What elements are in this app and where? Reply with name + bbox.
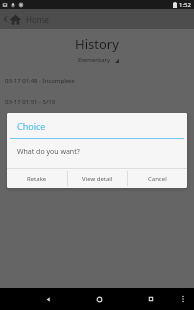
button[interactable]: Home: [74, 288, 125, 310]
staticText: Home: [26, 14, 49, 25]
button[interactable]: More options: [176, 288, 190, 310]
staticText: Elementary: [78, 56, 111, 64]
button[interactable]: Navigate up: [0, 9, 194, 29]
button[interactable]: Elementary: [78, 56, 119, 64]
button[interactable]: 03-17 01:48 - Incomplete: [0, 76, 194, 86]
button[interactable]: Back: [22, 288, 74, 310]
other: Navigate up: [3, 14, 8, 24]
other: Home: [9, 13, 22, 26]
staticText: History: [75, 35, 119, 53]
staticText: Retake: [27, 175, 47, 183]
staticText: Cancel: [148, 175, 167, 183]
staticText: Choice: [17, 120, 46, 132]
staticText: What do you want?: [17, 147, 80, 157]
button[interactable]: View detail: [68, 169, 127, 188]
button[interactable]: Recent apps: [125, 288, 176, 310]
staticText: View detail: [82, 175, 113, 183]
button[interactable]: Retake: [7, 169, 67, 188]
staticText: 1:52: [179, 1, 191, 9]
button[interactable]: 03-17 01:51 - 5/10: [0, 97, 194, 107]
button[interactable]: Cancel: [128, 169, 187, 188]
other: Select level: [115, 59, 119, 63]
staticText: 03-17 01:48 - Incomplete: [5, 77, 75, 85]
staticText: 03-17 01:51 - 5/10: [5, 98, 56, 106]
